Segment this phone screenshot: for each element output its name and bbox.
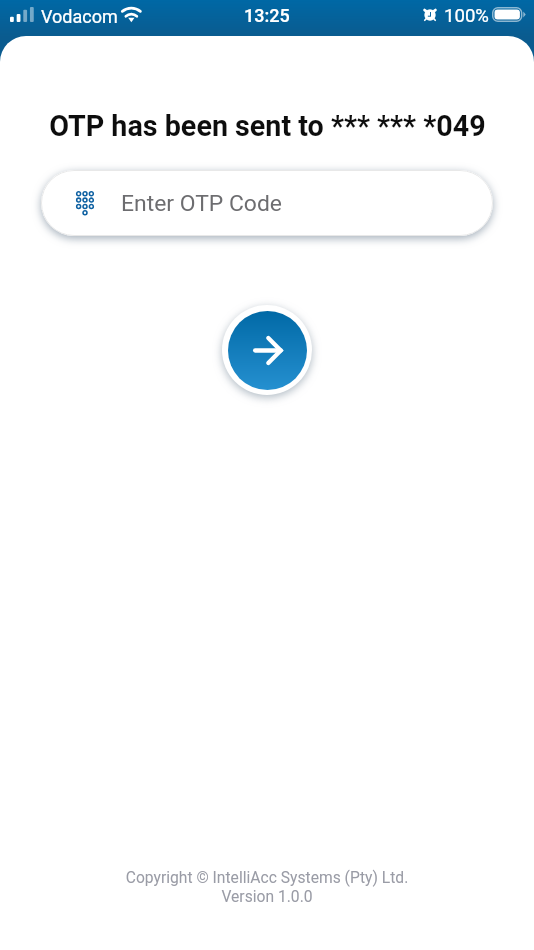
staticText: OTP has been sent to *** *** *049 xyxy=(49,109,486,143)
staticText: 13:25 xyxy=(244,5,290,26)
button[interactable]: Enter OTP Code xyxy=(41,170,493,236)
staticText: Copyright © IntelliAcc Systems (Pty) Ltd… xyxy=(0,868,534,886)
button[interactable]: Submit xyxy=(219,302,315,398)
staticText: Enter OTP Code xyxy=(121,190,282,217)
staticText: Vodacom xyxy=(41,6,118,27)
staticText: 100% xyxy=(444,5,489,27)
staticText: Version 1.0.0 xyxy=(0,887,534,905)
